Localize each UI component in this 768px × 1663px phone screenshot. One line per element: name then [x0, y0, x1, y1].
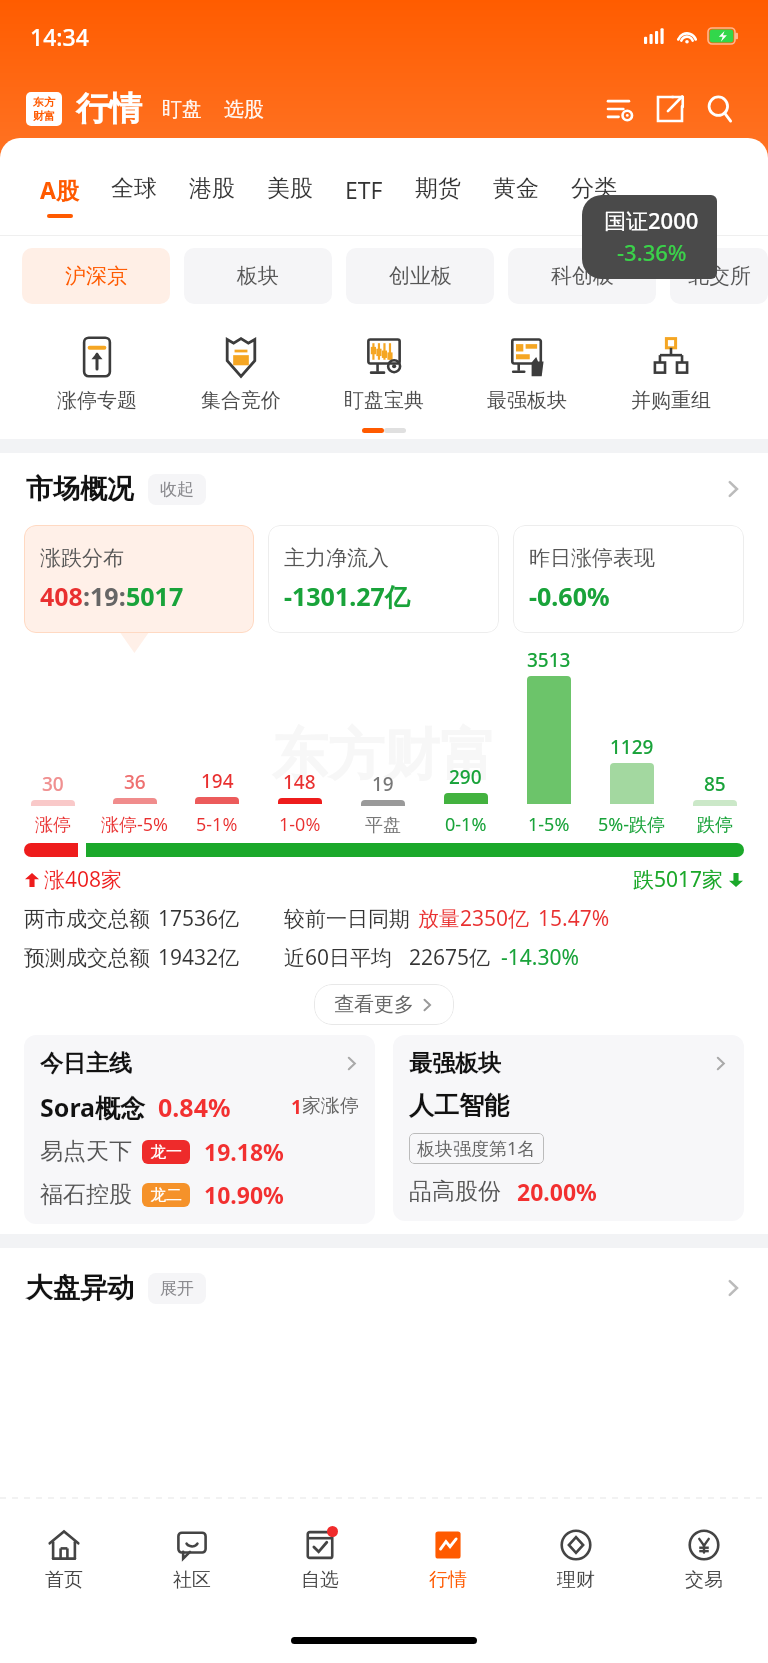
staticText: 预测成交总额 — [24, 945, 150, 971]
staticText: 福石控股 — [40, 1180, 132, 1209]
button[interactable]: 交易 — [640, 1499, 768, 1617]
button[interactable]: 社区 — [128, 1499, 256, 1617]
staticText: 选股 — [224, 97, 264, 122]
button[interactable]: 涨跌分布 — [24, 525, 254, 633]
staticText: 涨408家 — [44, 865, 123, 894]
staticText: 盯盘 — [162, 97, 202, 122]
staticText: -0.60% — [529, 579, 610, 613]
staticText: :19: — [83, 579, 126, 613]
staticText: 集合竞价 — [201, 388, 281, 413]
staticText: 板块 — [237, 263, 279, 289]
staticText: 大盘异动 — [26, 1271, 134, 1305]
staticText: 易点天下 — [40, 1137, 132, 1166]
staticText: 跌5017家 — [633, 865, 724, 894]
staticText: 408 — [40, 579, 83, 613]
button[interactable]: 黄金 — [477, 160, 555, 212]
staticText: 查看更多 — [334, 992, 414, 1017]
staticText: 收起 — [160, 479, 194, 500]
staticText: 跌停 — [697, 814, 733, 837]
staticText: 并购重组 — [631, 388, 711, 413]
button[interactable]: 期货 — [399, 160, 477, 212]
staticText: 港股 — [189, 174, 235, 203]
staticText: 近60日平均 — [284, 943, 393, 972]
staticText: 36 — [124, 769, 146, 795]
staticText: 家涨停 — [302, 1094, 359, 1118]
staticText: 290 — [449, 764, 482, 790]
staticText: 两市成交总额 — [24, 906, 150, 932]
staticText: -1301.27亿 — [284, 579, 410, 613]
staticText: 涨跌分布 — [40, 545, 124, 571]
staticText: 5017 — [126, 579, 184, 613]
staticText: 0-1% — [445, 812, 487, 837]
button[interactable]: A股 — [24, 160, 95, 218]
staticText: 14:34 — [30, 21, 89, 52]
staticText: 盯盘宝典 — [344, 388, 424, 413]
button[interactable]: 分类 — [555, 160, 633, 212]
staticText: 15.47% — [538, 904, 610, 933]
staticText: 19 — [372, 771, 394, 797]
staticText: 22675亿 — [409, 943, 491, 972]
button[interactable]: 自选 — [256, 1499, 384, 1617]
staticText: 30 — [42, 771, 64, 797]
button[interactable]: 行情 — [384, 1499, 512, 1617]
button[interactable]: 集合竞价 — [195, 330, 287, 417]
button[interactable]: 科创板 — [508, 248, 656, 304]
staticText: 1 — [291, 1094, 302, 1120]
staticText: 人工智能 — [409, 1090, 509, 1121]
button[interactable]: 美股 — [251, 160, 329, 212]
staticText: 19432亿 — [158, 943, 240, 972]
staticText: 自选 — [301, 1568, 339, 1592]
staticText: 理财 — [557, 1568, 595, 1592]
button[interactable]: 全球 — [95, 160, 173, 212]
staticText: 行情 — [429, 1568, 467, 1592]
button[interactable]: 创业板 — [346, 248, 494, 304]
staticText: 10.90% — [204, 1179, 284, 1210]
button[interactable]: List settings — [598, 87, 642, 131]
button[interactable]: 板块 — [184, 248, 332, 304]
staticText: 品高股份 — [409, 1177, 501, 1206]
button[interactable]: ETF — [329, 160, 399, 214]
staticText: 最强板块 — [487, 388, 567, 413]
staticText: 黄金 — [493, 174, 539, 203]
button[interactable]: 盯盘宝典 — [338, 330, 430, 417]
staticText: 科创板 — [551, 263, 614, 289]
button[interactable]: 主力净流入 — [268, 525, 499, 633]
button[interactable]: 选股 — [220, 91, 268, 128]
button[interactable]: 最强板块 — [481, 330, 573, 417]
staticText: 龙一 — [150, 1142, 182, 1162]
staticText: 最强板块 — [409, 1049, 501, 1078]
button[interactable]: 今日主线 — [24, 1035, 375, 1224]
staticText: Sora概念 — [40, 1090, 146, 1124]
button[interactable]: 涨停专题 — [51, 330, 143, 417]
button[interactable]: 昨日涨停表现 — [513, 525, 744, 633]
staticText: 期货 — [415, 174, 461, 203]
button[interactable]: 理财 — [512, 1499, 640, 1617]
staticText: 1-5% — [528, 812, 570, 837]
staticText: 涨停 — [35, 814, 71, 837]
staticText: 主力净流入 — [284, 545, 389, 571]
staticText: 北交所 — [688, 263, 751, 289]
staticText: 美股 — [267, 174, 313, 203]
button[interactable]: 首页 — [0, 1499, 128, 1617]
button[interactable]: Search — [698, 87, 742, 131]
button[interactable]: 沪深京 — [22, 248, 170, 304]
button[interactable]: 大盘异动 — [26, 1248, 742, 1328]
button[interactable]: 盯盘 — [158, 91, 206, 128]
button[interactable]: 最强板块 — [393, 1035, 744, 1221]
button[interactable]: 查看更多 — [314, 984, 454, 1025]
staticText: -14.30% — [501, 943, 579, 972]
staticText: 5%-跌停 — [598, 812, 666, 837]
staticText: 194 — [201, 768, 234, 794]
staticText: 20.00% — [517, 1176, 597, 1207]
button[interactable]: 并购重组 — [625, 330, 717, 417]
button[interactable]: 北交所 — [670, 248, 768, 304]
staticText: 平盘 — [365, 814, 401, 837]
staticText: 创业板 — [389, 263, 452, 289]
button[interactable]: Share — [648, 87, 692, 131]
staticText: 1-0% — [279, 812, 321, 837]
staticText: 放量2350亿 — [418, 904, 530, 933]
staticText: 148 — [283, 769, 316, 795]
staticText: -3.36% — [617, 237, 687, 267]
button[interactable]: 港股 — [173, 160, 251, 212]
button[interactable]: 市场概况 — [26, 453, 742, 525]
